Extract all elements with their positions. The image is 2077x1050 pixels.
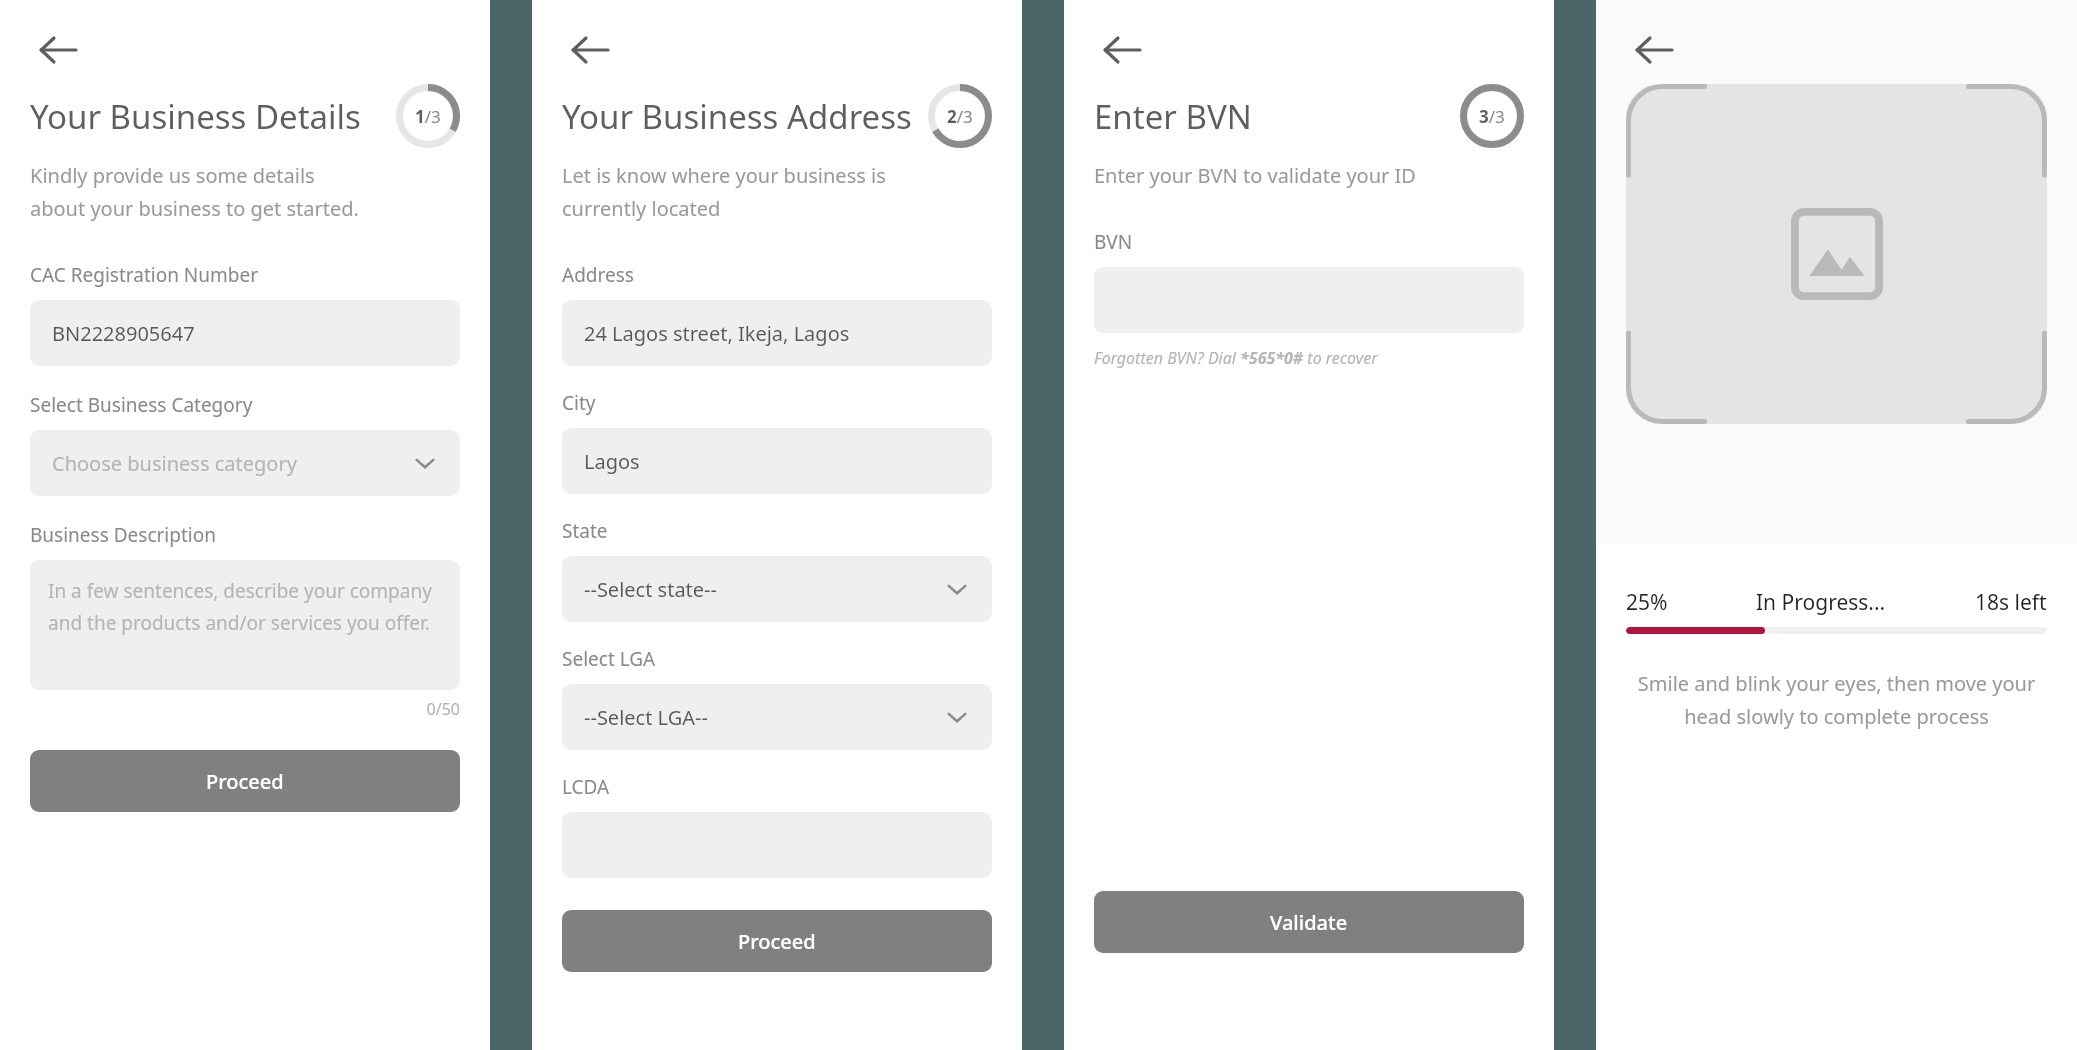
staticText: 3/3	[1479, 105, 1505, 128]
button[interactable]: BN2228905647	[30, 300, 460, 366]
staticText: Validate	[1270, 909, 1348, 936]
staticText: Forgotten BVN? Dial *565*0# to recover	[1094, 347, 1378, 369]
staticText: 0/50	[30, 698, 460, 720]
staticText: BN2228905647	[52, 320, 438, 347]
button[interactable]: Validate	[1094, 891, 1524, 953]
staticText: Business Description	[30, 522, 216, 548]
staticText: 1/3	[415, 105, 441, 128]
button[interactable]: Proceed	[562, 910, 992, 972]
button[interactable]: Choose business category	[30, 430, 460, 496]
button[interactable]: In a few sentences, describe your compan…	[30, 560, 460, 690]
staticText: LCDA	[562, 774, 610, 800]
staticText: 24 Lagos street, Ikeja, Lagos	[584, 320, 970, 347]
staticText: In Progress...	[1756, 588, 1886, 617]
staticText: Let is know where your business is curre…	[562, 162, 906, 222]
button[interactable]: Back	[1626, 22, 1682, 78]
staticText: Kindly provide us some details about you…	[30, 162, 374, 222]
staticText: Proceed	[738, 928, 816, 955]
staticText: Proceed	[206, 768, 284, 795]
staticText: Your Business Details	[30, 94, 396, 139]
staticText: State	[562, 518, 608, 544]
button[interactable]: Proceed	[30, 750, 460, 812]
staticText: Lagos	[584, 448, 970, 475]
staticText: Address	[562, 262, 634, 288]
staticText: Smile and blink your eyes, then move you…	[1626, 670, 2047, 730]
staticText: BVN	[1094, 229, 1133, 255]
staticText: Select LGA	[562, 646, 656, 672]
button[interactable]: Back	[30, 22, 86, 78]
button[interactable]: Back	[562, 22, 618, 78]
staticText: Choose business category	[52, 450, 412, 477]
staticText: --Select state--	[584, 576, 944, 603]
staticText: 2/3	[947, 105, 973, 128]
button[interactable]: Lagos	[562, 428, 992, 494]
staticText: City	[562, 390, 596, 416]
button[interactable]: Back	[1094, 22, 1150, 78]
button[interactable]: --Select LGA--	[562, 684, 992, 750]
staticText: 25%	[1626, 588, 1668, 617]
button[interactable]: --Select state--	[562, 556, 992, 622]
staticText: Select Business Category	[30, 392, 253, 418]
staticText: In a few sentences, describe your compan…	[48, 578, 442, 636]
staticText: Enter your BVN to validate your ID	[1094, 162, 1438, 189]
staticText: CAC Registration Number	[30, 262, 259, 288]
staticText: Your Business Address	[562, 94, 928, 139]
staticText: Enter BVN	[1094, 94, 1460, 139]
staticText: --Select LGA--	[584, 704, 944, 731]
button[interactable]: 24 Lagos street, Ikeja, Lagos	[562, 300, 992, 366]
staticText: 18s left	[1975, 588, 2047, 617]
